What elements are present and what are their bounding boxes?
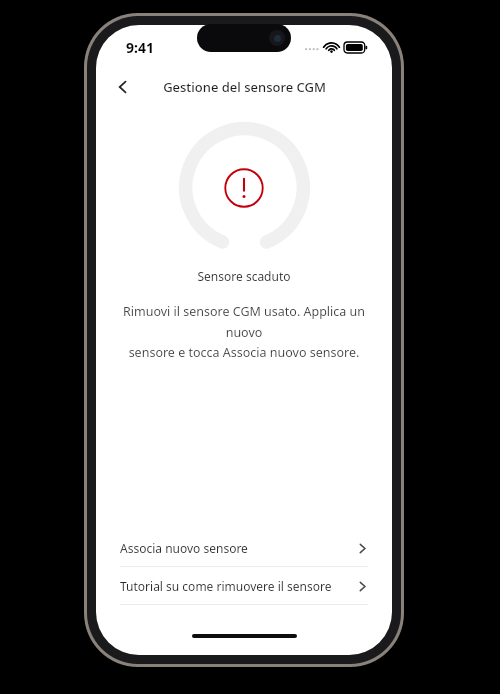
button[interactable]: Tutorial su come rimuovere il sensore: [96, 568, 392, 604]
button[interactable]: Indietro: [106, 70, 140, 104]
staticText: Associa nuovo sensore: [120, 540, 248, 556]
staticText: 9:41: [126, 38, 154, 57]
staticText: Tutorial su come rimuovere il sensore: [120, 578, 332, 594]
staticText: Gestione del sensore CGM: [163, 78, 326, 96]
staticText: Sensore scaduto: [96, 268, 392, 284]
button[interactable]: Associa nuovo sensore: [96, 530, 392, 566]
staticText: Rimuovi il sensore CGM usato. Applica un…: [106, 303, 382, 360]
